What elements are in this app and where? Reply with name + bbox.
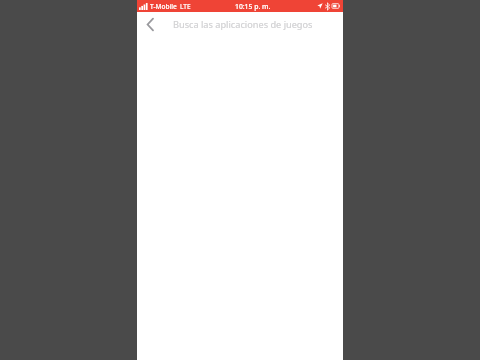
staticText: LTE (180, 2, 191, 11)
staticText: T-Mobile (150, 2, 177, 11)
button[interactable]: Atrás (137, 12, 163, 37)
staticText: 10:15 p. m. (235, 2, 271, 11)
button[interactable]: Busca las aplicaciones de juegos (163, 12, 343, 37)
staticText: Busca las aplicaciones de juegos (173, 18, 313, 31)
